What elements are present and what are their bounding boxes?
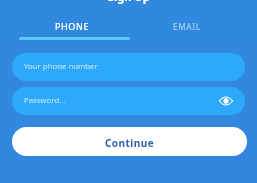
staticText: EMAIL: [173, 21, 201, 32]
button[interactable]: PHONE: [14, 17, 129, 35]
staticText: PHONE: [55, 20, 89, 32]
button[interactable]: EMAIL: [129, 17, 244, 35]
staticText: Continue: [105, 136, 155, 150]
button[interactable]: Password...: [12, 87, 245, 115]
staticText: Sign Up: [108, 0, 150, 4]
staticText: Password...: [24, 95, 66, 106]
staticText: Your phone number: [24, 61, 98, 72]
button[interactable]: Show password: [217, 92, 235, 110]
button[interactable]: Your phone number: [12, 53, 245, 81]
button[interactable]: Continue: [12, 127, 247, 156]
